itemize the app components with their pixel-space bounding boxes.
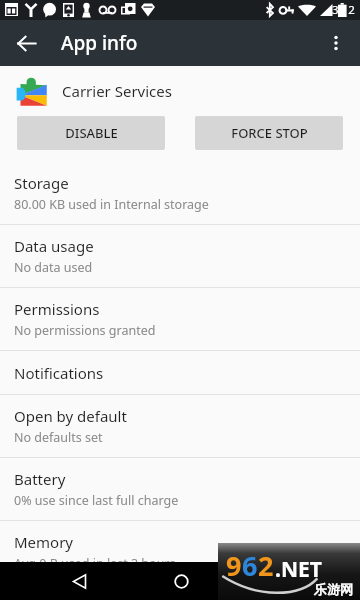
staticText: Battery	[14, 469, 66, 489]
staticText: Avg 0 B used in last 3 hours	[14, 555, 176, 572]
staticText: Storage	[14, 173, 69, 193]
button[interactable]: Home	[164, 564, 198, 598]
button[interactable]: DISABLE	[17, 116, 165, 150]
button[interactable]: Storage	[0, 162, 360, 224]
staticText: 6	[242, 547, 258, 584]
button[interactable]: Battery	[0, 458, 360, 520]
button[interactable]: Navigate up	[5, 22, 47, 64]
button[interactable]: Open by default	[0, 395, 360, 457]
staticText: Open by default	[14, 406, 127, 426]
staticText: .NET	[275, 555, 322, 584]
button[interactable]: Carrier Services	[0, 66, 360, 116]
staticText: DISABLE	[65, 124, 118, 142]
staticText: App info	[61, 30, 138, 56]
staticText: Carrier Services	[62, 81, 172, 101]
staticText: Notifications	[14, 363, 104, 383]
button[interactable]: Back	[62, 564, 96, 598]
button[interactable]: FORCE STOP	[195, 116, 343, 150]
staticText: Permissions	[14, 299, 100, 319]
staticText: FORCE STOP	[231, 124, 308, 142]
staticText: No permissions granted	[14, 322, 156, 339]
staticText: Data usage	[14, 236, 94, 256]
button[interactable]: Data usage	[0, 225, 360, 287]
staticText: 2	[258, 547, 274, 584]
staticText: 80.00 KB used in Internal storage	[14, 196, 209, 213]
staticText: 乐游网	[314, 581, 353, 597]
staticText: 9	[226, 547, 242, 584]
staticText: 0% use since last full charge	[14, 492, 179, 509]
button[interactable]: Memory	[0, 521, 360, 583]
staticText: 3:12	[332, 2, 355, 18]
button[interactable]: Permissions	[0, 288, 360, 350]
staticText: Memory	[14, 532, 74, 552]
button[interactable]: More options	[315, 22, 357, 64]
staticText: No defaults set	[14, 429, 103, 446]
button[interactable]: Notifications	[0, 351, 360, 394]
staticText: No data used	[14, 259, 93, 276]
